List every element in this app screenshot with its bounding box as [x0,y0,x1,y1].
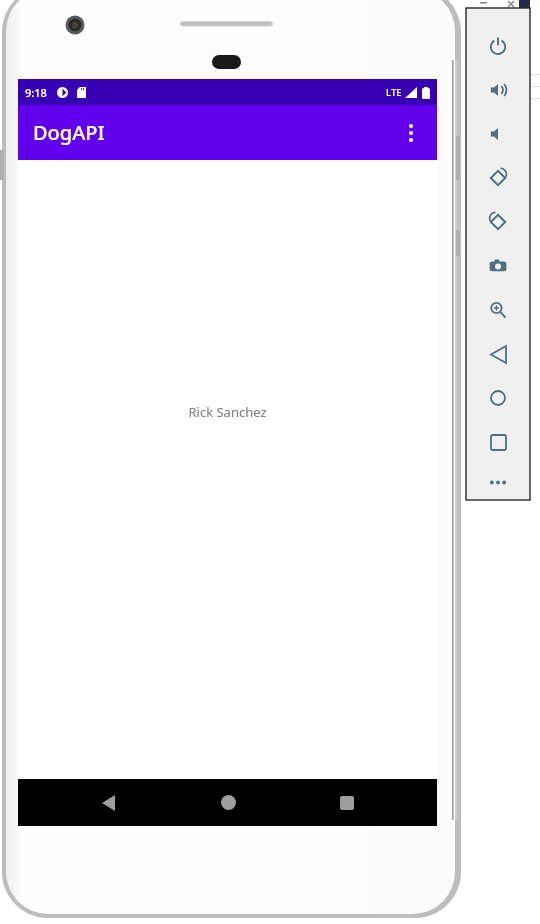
button[interactable]: Back [78,779,138,826]
button[interactable]: Rotate left [467,156,529,200]
button[interactable]: Back [467,332,529,376]
button[interactable]: Home [467,376,529,420]
button[interactable]: Take screenshot [467,244,529,288]
button[interactable]: Home [198,779,258,826]
button[interactable]: Volume down [467,112,529,156]
button[interactable]: Volume up [467,68,529,112]
button[interactable]: Zoom [467,288,529,332]
button[interactable]: Rotate right [467,200,529,244]
staticText: LTE [386,86,402,99]
button[interactable]: Recent apps [317,779,377,826]
button[interactable]: Power [467,24,529,68]
button[interactable]: More [467,464,529,500]
staticText: 9:18 [25,85,47,100]
staticText: DogAPI [33,119,105,146]
staticText: Rick Sanchez [188,403,267,421]
button[interactable]: More options [391,113,431,153]
button[interactable]: Overview [467,420,529,464]
